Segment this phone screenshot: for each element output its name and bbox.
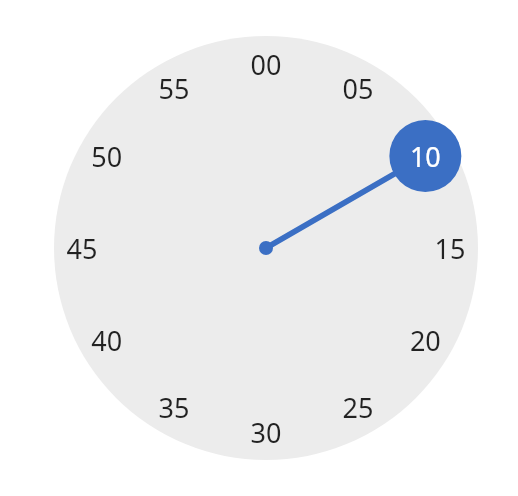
- button[interactable]: Minute dial, 10 minutes selected: [0, 0, 518, 496]
